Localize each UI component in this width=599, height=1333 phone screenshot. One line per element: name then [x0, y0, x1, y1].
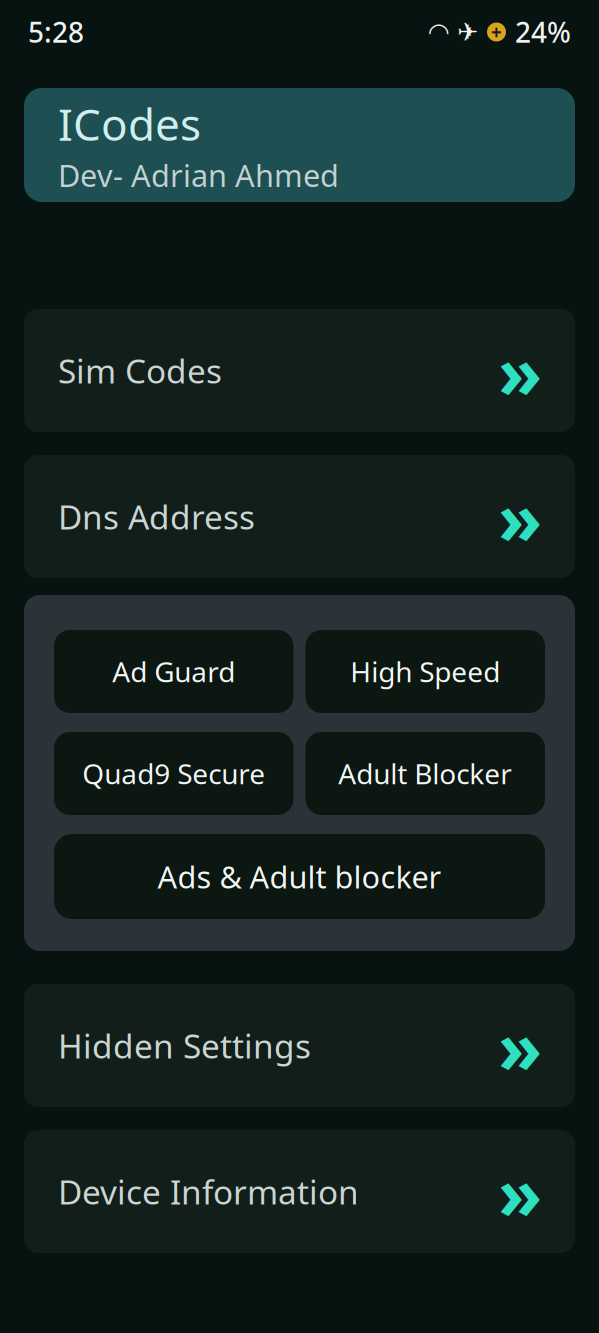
staticText: Ads & Adult blocker	[157, 856, 441, 897]
staticText: Quad9 Secure	[82, 755, 265, 792]
staticText: Dev- Adrian Ahmed	[58, 155, 339, 196]
button[interactable]: Dns Address	[24, 455, 575, 578]
staticText: »	[498, 1144, 542, 1239]
button[interactable]: Ads & Adult blocker	[54, 834, 545, 919]
staticText: Device Information	[58, 1169, 359, 1214]
staticText: High Speed	[350, 653, 500, 690]
button[interactable]: High Speed	[305, 630, 545, 713]
button[interactable]: Sim Codes	[24, 309, 575, 432]
staticText: ICodes	[58, 94, 201, 153]
staticText: 24%	[515, 13, 571, 51]
staticText: +	[491, 20, 502, 44]
staticText: Dns Address	[58, 494, 255, 539]
button[interactable]: Quad9 Secure	[54, 732, 293, 815]
staticText: Adult Blocker	[338, 755, 512, 792]
staticText: »	[498, 998, 542, 1093]
button[interactable]: Adult Blocker	[305, 732, 545, 815]
staticText: Ad Guard	[112, 653, 235, 690]
staticText: Hidden Settings	[58, 1023, 311, 1068]
staticText: Sim Codes	[58, 348, 222, 393]
button[interactable]: Hidden Settings	[24, 984, 575, 1107]
staticText: »	[498, 469, 542, 564]
button[interactable]: Ad Guard	[54, 630, 293, 713]
staticText: 5:28	[28, 13, 84, 51]
button[interactable]: Device Information	[24, 1130, 575, 1253]
staticText: »	[498, 323, 542, 418]
staticText: ◠	[429, 18, 448, 46]
staticText: ✈	[457, 18, 478, 46]
